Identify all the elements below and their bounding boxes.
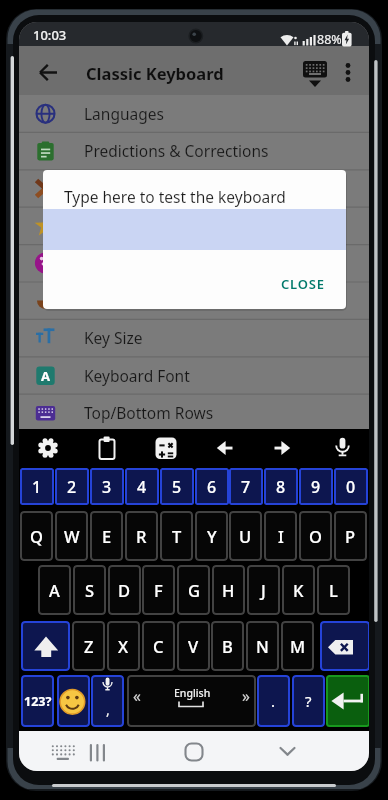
staticText: 2 [67,476,77,498]
staticText: 7 [241,476,251,498]
button[interactable]: 6 [195,468,229,505]
button[interactable]: 3 [90,468,124,505]
button[interactable]: D [108,565,141,615]
button[interactable]: V [177,621,210,671]
staticText: 1 [32,476,42,498]
button[interactable] [19,282,369,319]
button[interactable] [272,738,302,766]
button[interactable] [326,675,369,727]
staticText: J [261,579,266,601]
button[interactable]: F [142,565,175,615]
button[interactable]: 1 [20,468,54,505]
button[interactable] [82,738,112,766]
button[interactable]: R [125,511,158,561]
staticText: T [172,525,182,547]
button[interactable]: 5 [160,468,194,505]
button[interactable] [47,738,78,766]
button[interactable] [209,432,241,464]
staticText: Top/Bottom Rows [84,402,214,423]
staticText: Z [84,635,94,657]
button[interactable] [19,207,369,244]
staticText: 5 [172,476,182,498]
button[interactable]: J [247,565,280,615]
button[interactable]: H [212,565,245,615]
button[interactable]: 0 [334,468,368,505]
button[interactable] [91,675,124,727]
button[interactable]: 4 [125,468,159,505]
button[interactable]: C [142,621,175,671]
button[interactable]: W [55,511,88,561]
button[interactable] [19,170,369,207]
button[interactable] [32,432,64,464]
staticText: N [256,635,269,657]
button[interactable]: U [229,511,262,561]
staticText: Predictions & Corrections [84,140,269,161]
staticText: E [102,525,112,547]
button[interactable]: L [317,565,350,615]
staticText: C [153,635,164,657]
staticText: CLOSE [281,275,325,293]
button[interactable]: G [177,565,210,615]
button[interactable] [19,95,369,132]
staticText: A [41,367,50,385]
staticText: H [222,579,235,601]
staticText: 6 [207,476,217,498]
button[interactable]: S [73,565,106,615]
button[interactable] [91,432,123,464]
button[interactable]: P [334,511,367,561]
staticText: S [85,579,95,601]
button[interactable] [150,432,182,464]
staticText: K [293,579,304,601]
button[interactable] [127,675,256,727]
button[interactable]: 8 [264,468,298,505]
button[interactable]: 2 [55,468,89,505]
staticText: O [309,525,322,547]
button[interactable]: O [299,511,332,561]
button[interactable]: B [211,621,244,671]
button[interactable]: CLOSE [272,271,334,296]
button[interactable]: K [282,565,315,615]
button[interactable]: N [246,621,279,671]
staticText: L [329,579,338,601]
staticText: V [188,635,199,657]
button[interactable]: Q [20,511,53,561]
button[interactable]: E [90,511,123,561]
button[interactable] [268,432,300,464]
button[interactable]: 123? [21,675,54,727]
staticText: W [64,525,80,547]
button[interactable]: X [107,621,140,671]
button[interactable] [57,675,90,727]
staticText: » [242,685,250,706]
button[interactable]: 7 [229,468,263,505]
staticText: Q [30,525,43,547]
button[interactable] [19,245,369,282]
button[interactable]: I [264,511,297,561]
button[interactable]: ? [292,675,325,727]
staticText: 123? [24,693,52,710]
button[interactable]: 9 [299,468,333,505]
button[interactable] [19,394,369,431]
button[interactable] [21,621,70,671]
button[interactable] [327,432,359,464]
button[interactable] [337,56,361,90]
button[interactable]: T [160,511,193,561]
staticText: X [118,635,129,657]
staticText: 9 [311,476,321,498]
button[interactable]: Z [72,621,105,671]
staticText: B [222,635,233,657]
button[interactable] [179,738,209,766]
button[interactable]: . [257,675,290,727]
button[interactable] [19,357,369,394]
staticText: Type here to test the keyboard [64,186,286,207]
button[interactable] [33,58,63,88]
button[interactable] [19,132,369,169]
button[interactable] [320,621,369,671]
button[interactable] [19,319,369,356]
button[interactable]: A [38,565,71,615]
button[interactable] [299,56,331,90]
button[interactable]: M [281,621,314,671]
staticText: , [106,700,110,719]
staticText: English [174,686,211,700]
button[interactable]: Y [195,511,228,561]
